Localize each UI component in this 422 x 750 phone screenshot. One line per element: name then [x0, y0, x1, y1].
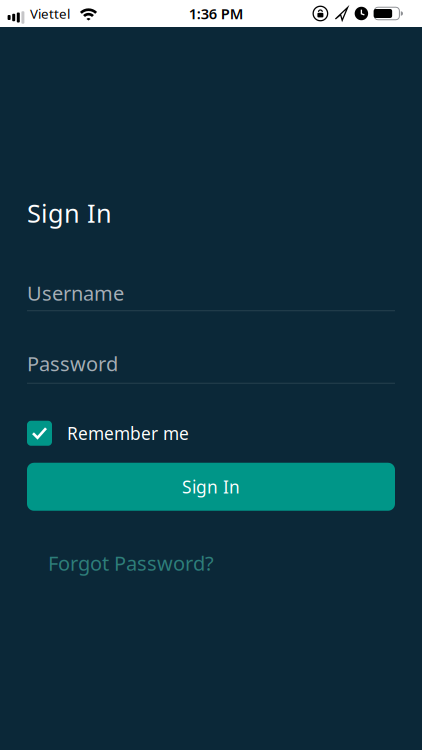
button[interactable]: Remember me [27, 421, 189, 446]
staticText: Remember me [67, 422, 189, 445]
staticText: 1:36 PM [189, 4, 244, 23]
staticText: Sign In [27, 196, 112, 230]
staticText: Password [27, 350, 118, 377]
staticText: Username [27, 280, 124, 306]
staticText: Sign In [182, 475, 240, 498]
button[interactable]: Sign In [27, 463, 395, 511]
staticText: Forgot Password? [48, 550, 214, 576]
staticText: Viettel [30, 5, 70, 22]
button[interactable]: Forgot Password? [48, 550, 214, 576]
